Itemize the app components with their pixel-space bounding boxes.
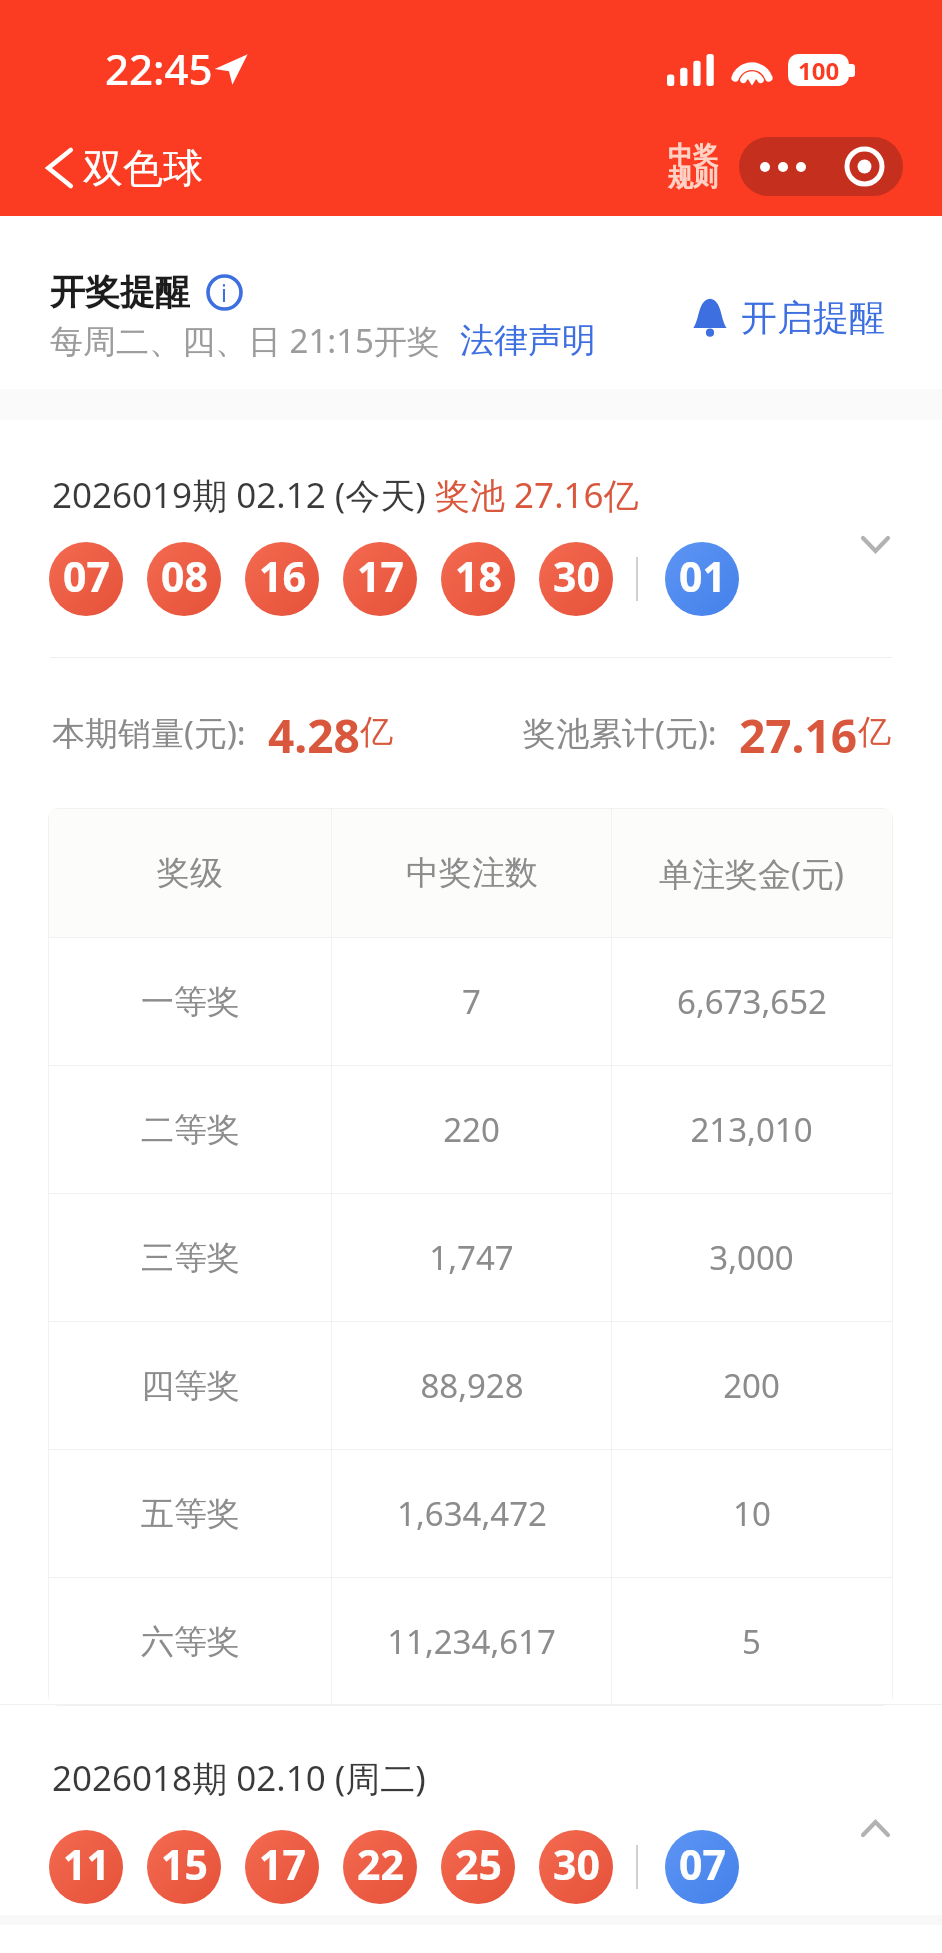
- button[interactable]: 双色球: [37, 137, 211, 199]
- staticText: 每周二、四、日 21:15开奖: [50, 318, 440, 363]
- staticText: 30: [553, 548, 600, 604]
- staticText: 开奖提醒: [50, 270, 190, 314]
- staticText: 5: [742, 1619, 761, 1664]
- staticText: 规则: [668, 162, 718, 193]
- staticText: 11: [63, 1836, 110, 1892]
- staticText: 二等奖: [141, 1109, 240, 1151]
- button[interactable]: 法律声明: [460, 319, 596, 362]
- staticText: 一等奖: [141, 981, 240, 1023]
- staticText: 奖池 27.16亿: [435, 471, 639, 519]
- staticText: 213,010: [690, 1107, 813, 1152]
- staticText: 六等奖: [141, 1621, 240, 1663]
- staticText: 88,928: [420, 1363, 524, 1408]
- staticText: 15: [161, 1836, 208, 1892]
- staticText: 22: [357, 1836, 404, 1892]
- staticText: 07: [679, 1836, 726, 1892]
- staticText: 17: [357, 548, 404, 604]
- button[interactable]: Expand draw details: [849, 518, 901, 570]
- staticText: 6,673,652: [677, 979, 827, 1024]
- staticText: 08: [161, 548, 208, 604]
- staticText: 中奖注数: [406, 852, 538, 894]
- staticText: i: [221, 277, 227, 308]
- staticText: 200: [723, 1363, 780, 1408]
- staticText: 1,747: [429, 1235, 514, 1280]
- button[interactable]: More options: [739, 137, 826, 196]
- button[interactable]: 开启提醒: [689, 291, 889, 344]
- staticText: 7: [462, 979, 481, 1024]
- staticText: 10: [733, 1491, 771, 1536]
- staticText: 双色球: [83, 143, 203, 193]
- button[interactable]: Collapse draw details: [849, 1802, 901, 1854]
- staticText: 25: [455, 1836, 502, 1892]
- staticText: 三等奖: [141, 1237, 240, 1279]
- staticText: 27.16: [739, 704, 858, 760]
- staticText: 亿: [858, 711, 891, 753]
- staticText: 11,234,617: [387, 1619, 556, 1664]
- staticText: 3,000: [709, 1235, 794, 1280]
- staticText: 07: [63, 548, 110, 604]
- staticText: 单注奖金(元): [659, 851, 844, 896]
- button[interactable]: 中奖: [668, 136, 718, 196]
- staticText: 本期销量(元):: [52, 710, 246, 755]
- button[interactable]: Close mini program: [826, 137, 903, 196]
- staticText: 30: [553, 1836, 600, 1892]
- staticText: 18: [455, 548, 502, 604]
- staticText: 2026019期 02.12 (今天): [52, 471, 435, 519]
- staticText: 1,634,472: [397, 1491, 547, 1536]
- staticText: 开启提醒: [741, 295, 885, 340]
- staticText: 01: [679, 548, 726, 604]
- staticText: 2026018期 02.10 (周二): [52, 1754, 426, 1802]
- button[interactable]: Information: [204, 272, 244, 312]
- staticText: 100: [798, 54, 840, 86]
- staticText: 17: [259, 1836, 306, 1892]
- staticText: 五等奖: [141, 1493, 240, 1535]
- staticText: 220: [443, 1107, 500, 1152]
- staticText: 16: [259, 548, 306, 604]
- staticText: 奖池累计(元):: [523, 710, 717, 755]
- staticText: 四等奖: [141, 1365, 240, 1407]
- staticText: 4.28: [268, 704, 360, 760]
- staticText: 法律声明: [460, 319, 596, 362]
- staticText: 奖级: [157, 852, 223, 894]
- staticText: 亿: [360, 711, 393, 753]
- staticText: 中奖: [668, 140, 718, 171]
- staticText: 22:45: [105, 40, 213, 97]
